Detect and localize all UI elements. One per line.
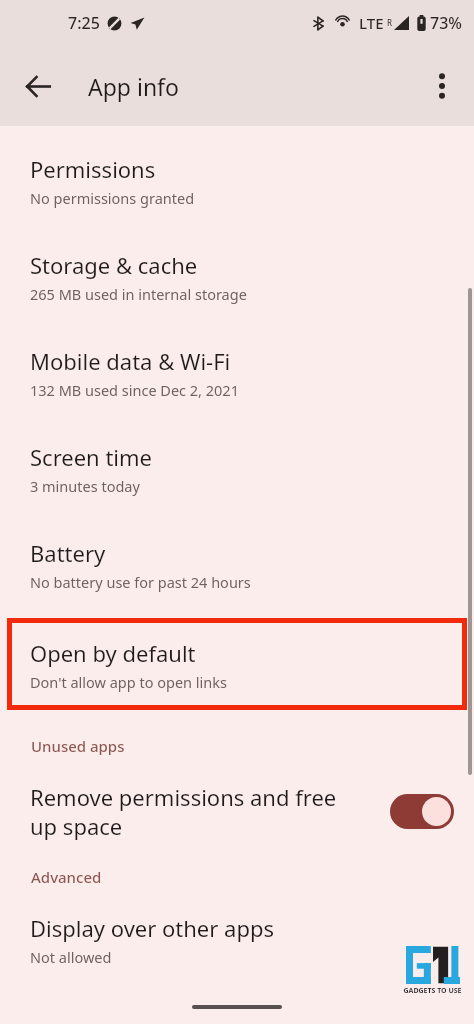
- staticText: No battery use for past 24 hours: [30, 572, 251, 592]
- staticText: LTE: [359, 13, 384, 33]
- staticText: Open by default: [30, 638, 196, 668]
- staticText: 73%: [430, 12, 462, 34]
- staticText: Unused apps: [31, 736, 125, 756]
- button[interactable]: Mobile data & Wi-Fi: [0, 304, 474, 400]
- button[interactable]: Display over other apps: [0, 913, 474, 967]
- button[interactable]: Remove permissions toggle: [390, 794, 454, 829]
- staticText: Mobile data & Wi-Fi: [30, 346, 231, 376]
- staticText: Battery: [30, 538, 106, 568]
- staticText: Remove permissions and free up space: [30, 782, 350, 841]
- button[interactable]: Permissions: [0, 126, 474, 208]
- button[interactable]: Open by default: [0, 618, 474, 692]
- staticText: 3 minutes today: [30, 476, 140, 496]
- staticText: App info: [88, 71, 179, 102]
- staticText: R: [387, 17, 393, 28]
- staticText: Not allowed: [30, 947, 112, 967]
- staticText: No permissions granted: [30, 188, 195, 208]
- staticText: Permissions: [30, 154, 156, 184]
- staticText: 265 MB used in internal storage: [30, 284, 247, 304]
- button[interactable]: Screen time: [0, 400, 474, 496]
- button[interactable]: Remove permissions and free up space: [0, 756, 474, 841]
- staticText: Display over other apps: [30, 913, 275, 943]
- staticText: 7:25: [68, 12, 100, 34]
- button[interactable]: Back: [14, 62, 62, 110]
- staticText: Storage & cache: [30, 250, 198, 280]
- button[interactable]: Storage & cache: [0, 208, 474, 304]
- button[interactable]: More options: [418, 62, 466, 110]
- staticText: Advanced: [31, 867, 102, 887]
- staticText: Don't allow app to open links: [30, 672, 227, 692]
- staticText: GADGETS TO USE: [403, 986, 462, 996]
- staticText: 132 MB used since Dec 2, 2021: [30, 380, 239, 400]
- button[interactable]: Battery: [0, 496, 474, 592]
- staticText: Screen time: [30, 442, 153, 472]
